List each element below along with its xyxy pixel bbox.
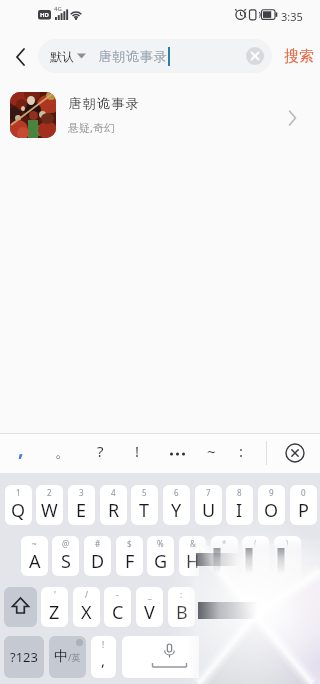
staticText: L xyxy=(283,549,293,574)
staticText: 悬疑,奇幻 xyxy=(68,120,115,135)
button[interactable] xyxy=(284,442,306,464)
staticText: Q xyxy=(11,498,26,523)
button[interactable]: ; xyxy=(200,587,227,627)
staticText: 4 xyxy=(111,487,116,498)
staticText: : xyxy=(180,589,183,600)
staticText: _ xyxy=(148,589,152,600)
staticText: B xyxy=(176,600,188,625)
staticText: 。 xyxy=(228,649,241,665)
staticText: ?123 xyxy=(10,648,38,666)
staticText: & xyxy=(190,538,196,549)
button[interactable]: 4 xyxy=(100,485,127,525)
staticText: 7 xyxy=(206,487,211,498)
staticText: T xyxy=(139,498,150,523)
button[interactable]: : xyxy=(239,441,244,461)
button[interactable]: 8 xyxy=(226,485,253,525)
staticText: E xyxy=(76,498,87,523)
staticText: ~ xyxy=(32,538,37,549)
staticText: ! xyxy=(102,639,105,650)
button[interactable] xyxy=(8,44,34,70)
staticText: - xyxy=(116,589,119,600)
staticText: J xyxy=(222,549,227,574)
button[interactable] xyxy=(122,636,217,678)
staticText: G xyxy=(154,549,168,574)
button[interactable]: % xyxy=(147,536,174,576)
staticText: Z xyxy=(49,600,60,625)
button[interactable]: ~ xyxy=(21,536,48,576)
staticText: H xyxy=(186,549,200,574)
button[interactable]: / xyxy=(73,587,100,627)
staticText: M xyxy=(236,600,253,625)
staticText: I xyxy=(236,498,243,523)
button[interactable]: ? xyxy=(97,441,104,461)
staticText: ( xyxy=(254,538,257,549)
button[interactable]: ~ xyxy=(207,441,216,461)
staticText: F xyxy=(125,549,135,574)
staticText: /英 xyxy=(68,651,81,663)
staticText: 6 xyxy=(174,487,179,498)
button[interactable]: & xyxy=(179,536,206,576)
staticText: N xyxy=(207,600,221,625)
button[interactable]: ?123 xyxy=(4,636,44,678)
button[interactable]: 1 xyxy=(5,485,32,525)
button[interactable]: ! xyxy=(135,441,140,461)
staticText: 3:35 xyxy=(281,9,303,24)
staticText: 8 xyxy=(237,487,242,498)
staticText: 4G xyxy=(54,5,62,13)
staticText: # xyxy=(95,538,101,549)
staticText: 3 xyxy=(79,487,84,498)
button[interactable]: * xyxy=(211,536,238,576)
staticText: C xyxy=(112,600,124,625)
button[interactable] xyxy=(246,47,264,65)
button[interactable]: 7 xyxy=(195,485,222,525)
staticText: 唐朝诡事录 xyxy=(68,95,139,111)
button[interactable]: : xyxy=(168,587,195,627)
button[interactable]: , xyxy=(18,435,24,462)
button[interactable]: 中 xyxy=(49,636,86,678)
button[interactable]: 9 xyxy=(258,485,285,525)
staticText: 1 xyxy=(16,487,21,498)
staticText: 5 xyxy=(142,487,147,498)
button[interactable]: 2 xyxy=(36,485,63,525)
staticText: U xyxy=(202,498,216,523)
staticText: S xyxy=(61,549,71,574)
button[interactable] xyxy=(168,441,190,463)
staticText: @ xyxy=(62,538,70,549)
staticText: 默认 xyxy=(50,49,74,64)
button[interactable]: ) xyxy=(274,536,301,576)
staticText: / xyxy=(85,589,88,600)
button[interactable]: ( xyxy=(242,536,269,576)
button[interactable]: 默认 xyxy=(38,39,272,73)
staticText: A xyxy=(29,549,41,574)
button[interactable]: 搜索 xyxy=(280,42,318,70)
button[interactable]: 。 xyxy=(222,636,247,678)
button[interactable]: _ xyxy=(136,587,163,627)
staticText: % xyxy=(157,538,164,549)
button[interactable]: ! xyxy=(91,636,116,678)
button[interactable]: 。 xyxy=(55,443,70,462)
button[interactable]: 5 xyxy=(131,485,158,525)
button[interactable]: 唐朝诡事录 xyxy=(0,86,320,150)
staticText: D xyxy=(91,549,105,574)
button[interactable]: 0 xyxy=(290,485,317,525)
button[interactable]: @ xyxy=(52,536,79,576)
button[interactable]: # xyxy=(84,536,111,576)
staticText: V xyxy=(144,600,155,625)
button[interactable]: $ xyxy=(116,536,143,576)
staticText: Y xyxy=(171,498,182,523)
staticText: HD xyxy=(40,11,49,19)
button[interactable]: - xyxy=(104,587,131,627)
staticText: 0 xyxy=(301,487,306,498)
button[interactable]: ' xyxy=(41,587,68,627)
button[interactable]: 3 xyxy=(68,485,95,525)
button[interactable]: ? xyxy=(231,587,258,627)
button[interactable] xyxy=(264,587,317,627)
staticText: , xyxy=(101,650,106,670)
staticText: R xyxy=(108,498,120,523)
button[interactable] xyxy=(253,636,317,678)
button[interactable] xyxy=(4,587,37,627)
button[interactable]: 6 xyxy=(163,485,190,525)
staticText: K xyxy=(250,549,262,574)
